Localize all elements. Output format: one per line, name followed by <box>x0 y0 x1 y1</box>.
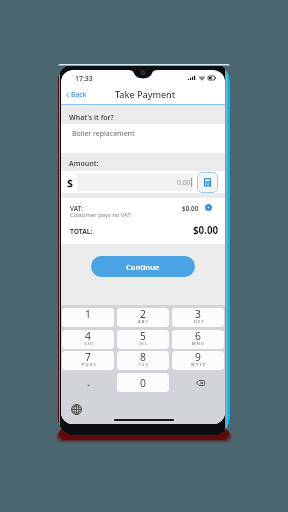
staticText: 3 <box>195 308 201 321</box>
staticText: Back <box>71 90 87 99</box>
staticText: 8 <box>140 351 146 364</box>
staticText: 4 <box>85 330 91 343</box>
button[interactable]: 6 <box>172 330 224 349</box>
button[interactable]: Back <box>66 88 87 101</box>
staticText: 6 <box>195 330 201 343</box>
staticText: DEF <box>194 319 205 324</box>
button[interactable]: Continue <box>91 256 195 277</box>
staticText: 17:33 <box>75 74 93 83</box>
staticText: 0.00 <box>177 178 191 187</box>
staticText: WXYZ <box>191 362 207 367</box>
button[interactable]: 7 <box>62 351 114 370</box>
button[interactable]: Decimal point <box>62 373 114 392</box>
button[interactable]: VAT settings <box>205 204 212 211</box>
button[interactable]: Change keyboard <box>71 404 82 415</box>
staticText: 5 <box>140 330 146 343</box>
staticText: VAT: <box>70 204 84 213</box>
staticText: GHI <box>84 341 95 346</box>
staticText: 9 <box>195 351 201 364</box>
staticText: Amount: <box>69 159 99 169</box>
button[interactable]: 8 <box>117 351 169 370</box>
button[interactable]: 4 <box>62 330 114 349</box>
button[interactable]: 3 <box>172 308 224 327</box>
button[interactable]: 9 <box>172 351 224 370</box>
staticText: Continue <box>126 262 160 272</box>
staticText: 0 <box>140 376 146 390</box>
staticText: $0.00 <box>182 204 199 213</box>
staticText: Boiler replacement <box>72 129 135 139</box>
staticText: 1 <box>85 308 91 321</box>
staticText: TOTAL: <box>70 227 93 236</box>
staticText: 7 <box>85 351 91 364</box>
button[interactable]: 1 <box>62 308 114 327</box>
staticText: Take Payment <box>115 88 176 100</box>
staticText: ABC <box>138 319 150 324</box>
button[interactable]: Backspace <box>172 373 224 392</box>
button[interactable]: 5 <box>117 330 169 349</box>
staticText: JKL <box>139 341 149 346</box>
staticText: TUV <box>138 362 150 367</box>
staticText: $0.00 <box>193 224 219 237</box>
staticText: 2 <box>140 308 146 321</box>
button[interactable]: 2 <box>117 308 169 327</box>
button[interactable]: Calculator <box>197 172 218 193</box>
staticText: MNO <box>192 341 206 346</box>
staticText: PQRS <box>82 362 97 367</box>
staticText: Customer pays no VAT <box>70 211 131 219</box>
button[interactable]: 0 <box>117 373 169 392</box>
staticText: What's it for? <box>69 113 114 123</box>
staticText: $ <box>67 176 74 190</box>
